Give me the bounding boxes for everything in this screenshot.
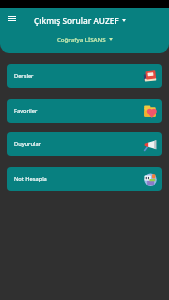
staticText: Duyurular (14, 140, 41, 148)
button[interactable]: Menu (1, 8, 22, 29)
staticText: Coğrafya LİSANS (57, 35, 106, 43)
button[interactable]: Not Hesapla (7, 167, 162, 191)
staticText: Favoriler (14, 107, 38, 115)
button[interactable]: Favoriler (7, 99, 162, 123)
staticText: Çıkmış Sorular AUZEF (34, 15, 119, 26)
staticText: Not Hesapla (14, 175, 47, 183)
staticText: Dersler (14, 72, 34, 80)
button[interactable]: Dersler (7, 64, 162, 88)
button[interactable]: Duyurular (7, 132, 162, 156)
